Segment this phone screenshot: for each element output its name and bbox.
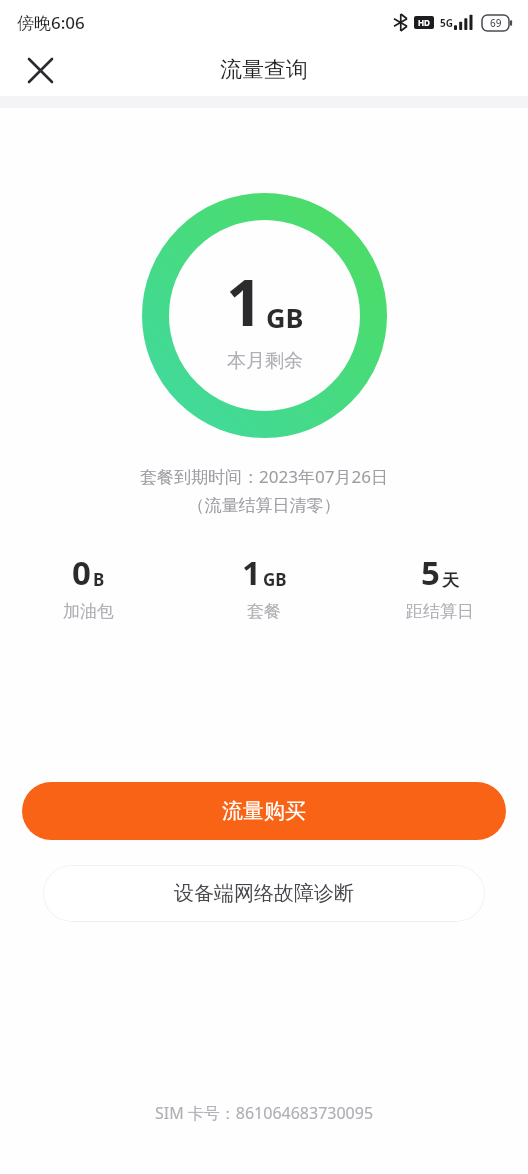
staticText: 傍晚6:06 [17, 11, 85, 34]
staticText: 天 [442, 570, 459, 591]
staticText: 流量购买 [222, 798, 306, 824]
button[interactable]: Close [16, 46, 64, 94]
staticText: （流量结算日清零） [0, 495, 528, 516]
staticText: 套餐 [247, 601, 281, 622]
staticText: 本月剩余 [227, 349, 303, 373]
staticText: 流量查询 [220, 56, 308, 84]
staticText: 5 [421, 550, 440, 595]
staticText: B [93, 568, 105, 591]
staticText: HD [418, 17, 430, 28]
staticText: 69 [490, 16, 502, 30]
button[interactable]: 设备端网络故障诊断 [43, 865, 485, 922]
staticText: GB [266, 299, 304, 336]
staticText: 加油包 [63, 601, 114, 622]
staticText: 设备端网络故障诊断 [174, 881, 354, 906]
staticText: 1 [242, 550, 261, 595]
staticText: SIM 卡号：861064683730095 [0, 1102, 528, 1124]
staticText: 套餐到期时间：2023年07月26日 [0, 465, 528, 488]
button[interactable]: 流量购买 [22, 782, 506, 840]
staticText: 距结算日 [406, 601, 474, 622]
staticText: 0 [72, 550, 91, 595]
staticText: 5G [440, 16, 453, 30]
staticText: GB [263, 568, 287, 591]
staticText: 1 [226, 258, 263, 345]
